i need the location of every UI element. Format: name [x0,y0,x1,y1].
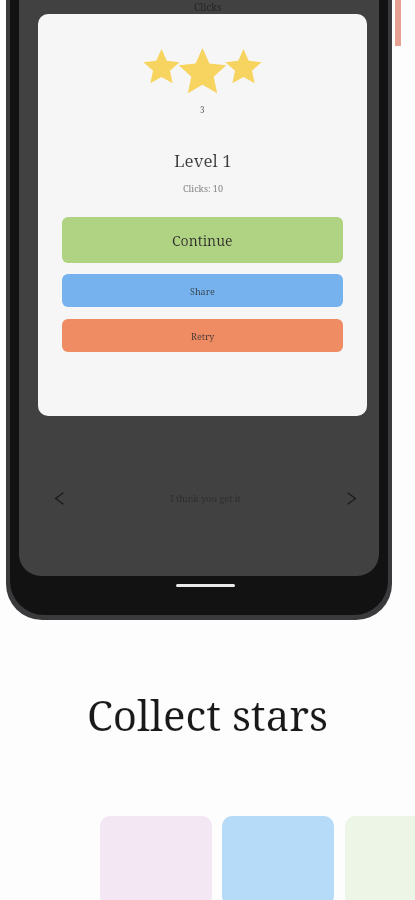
button[interactable]: Next page [337,484,365,512]
staticText: I think you get it [170,492,241,504]
staticText: Clicks: 10 [183,182,223,194]
staticText: Level 1 [174,149,232,172]
button[interactable]: Retry [62,319,343,352]
button[interactable]: Previous page [45,484,73,512]
staticText: Collect stars [87,686,328,743]
staticText: Continue [172,231,233,250]
button[interactable] [222,816,334,900]
staticText: Retry [191,330,215,342]
button[interactable]: Share [62,274,343,307]
staticText: Share [190,285,215,297]
staticText: 3 [200,104,205,115]
staticText: Clicks [194,0,222,11]
button[interactable]: Continue [62,217,343,263]
